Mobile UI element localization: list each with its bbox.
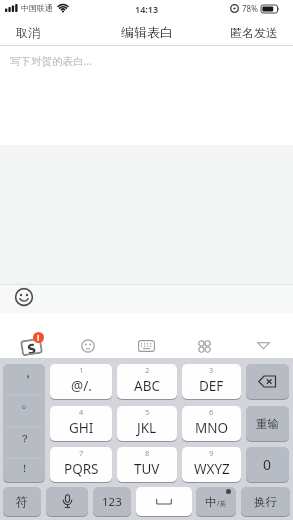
staticText: 9 xyxy=(209,448,214,458)
staticText: 中 xyxy=(205,495,217,509)
staticText: 8 xyxy=(145,448,150,458)
staticText: 7 xyxy=(79,448,84,458)
button[interactable] xyxy=(197,339,212,354)
staticText: 14:13 xyxy=(135,3,159,15)
button[interactable] xyxy=(80,338,96,354)
staticText: 换行 xyxy=(254,495,277,509)
staticText: 3 xyxy=(209,365,214,375)
staticText: 1 xyxy=(79,365,84,375)
button[interactable]: 123 xyxy=(93,487,131,516)
button[interactable] xyxy=(0,285,293,313)
staticText: 写下对贺的表白... xyxy=(10,54,92,68)
staticText: PQRS xyxy=(64,460,99,478)
button[interactable] xyxy=(46,487,88,516)
staticText: TUV xyxy=(134,460,160,478)
staticText: /英 xyxy=(217,499,226,508)
button[interactable] xyxy=(138,340,155,352)
button[interactable]: 7 xyxy=(50,447,112,482)
staticText: 2 xyxy=(145,365,150,375)
staticText: 6 xyxy=(209,407,214,417)
button[interactable] xyxy=(136,487,192,516)
staticText: ！ xyxy=(19,462,30,475)
staticText: ， xyxy=(21,364,35,382)
button[interactable]: 3 xyxy=(182,364,241,399)
staticText: ABC xyxy=(134,377,160,395)
button[interactable]: 符 xyxy=(3,487,41,516)
staticText: ？ xyxy=(19,432,30,445)
staticText: 123 xyxy=(102,494,122,510)
staticText: 取消 xyxy=(16,25,40,40)
staticText: 0 xyxy=(263,455,272,474)
button[interactable]: 2 xyxy=(117,364,177,399)
staticText: WXYZ xyxy=(194,460,230,478)
staticText: 。 xyxy=(21,394,35,412)
staticText: ! xyxy=(37,332,40,343)
staticText: 4 xyxy=(79,407,84,417)
staticText: 编辑表白 xyxy=(121,24,173,40)
button[interactable]: 5 xyxy=(117,406,177,441)
button[interactable]: 换行 xyxy=(241,487,290,516)
staticText: S xyxy=(25,338,38,356)
button[interactable] xyxy=(257,342,270,350)
button[interactable] xyxy=(3,364,45,482)
staticText: 中国联通 xyxy=(21,3,53,13)
button[interactable]: 9 xyxy=(182,447,241,482)
staticText: JKL xyxy=(137,419,157,437)
button[interactable]: S xyxy=(20,337,43,357)
staticText: 符 xyxy=(16,494,28,509)
staticText: 78% xyxy=(242,3,258,14)
button[interactable]: 6 xyxy=(182,406,241,441)
staticText: 5 xyxy=(145,407,150,417)
button[interactable] xyxy=(246,364,289,399)
button[interactable]: 中 xyxy=(196,487,236,516)
button[interactable]: 匿名发送 xyxy=(225,19,283,45)
button[interactable]: 8 xyxy=(117,447,177,482)
staticText: 匿名发送 xyxy=(230,25,278,40)
staticText: 重输 xyxy=(256,417,279,431)
staticText: MNO xyxy=(195,419,229,437)
staticText: @/. xyxy=(71,377,92,395)
staticText: GHI xyxy=(69,419,94,437)
button[interactable]: 0 xyxy=(246,447,289,482)
button[interactable]: 4 xyxy=(50,406,112,441)
button[interactable]: 重输 xyxy=(246,406,289,441)
button[interactable]: 1 xyxy=(50,364,112,399)
button[interactable]: 取消 xyxy=(16,19,56,45)
staticText: DEF xyxy=(199,377,224,395)
